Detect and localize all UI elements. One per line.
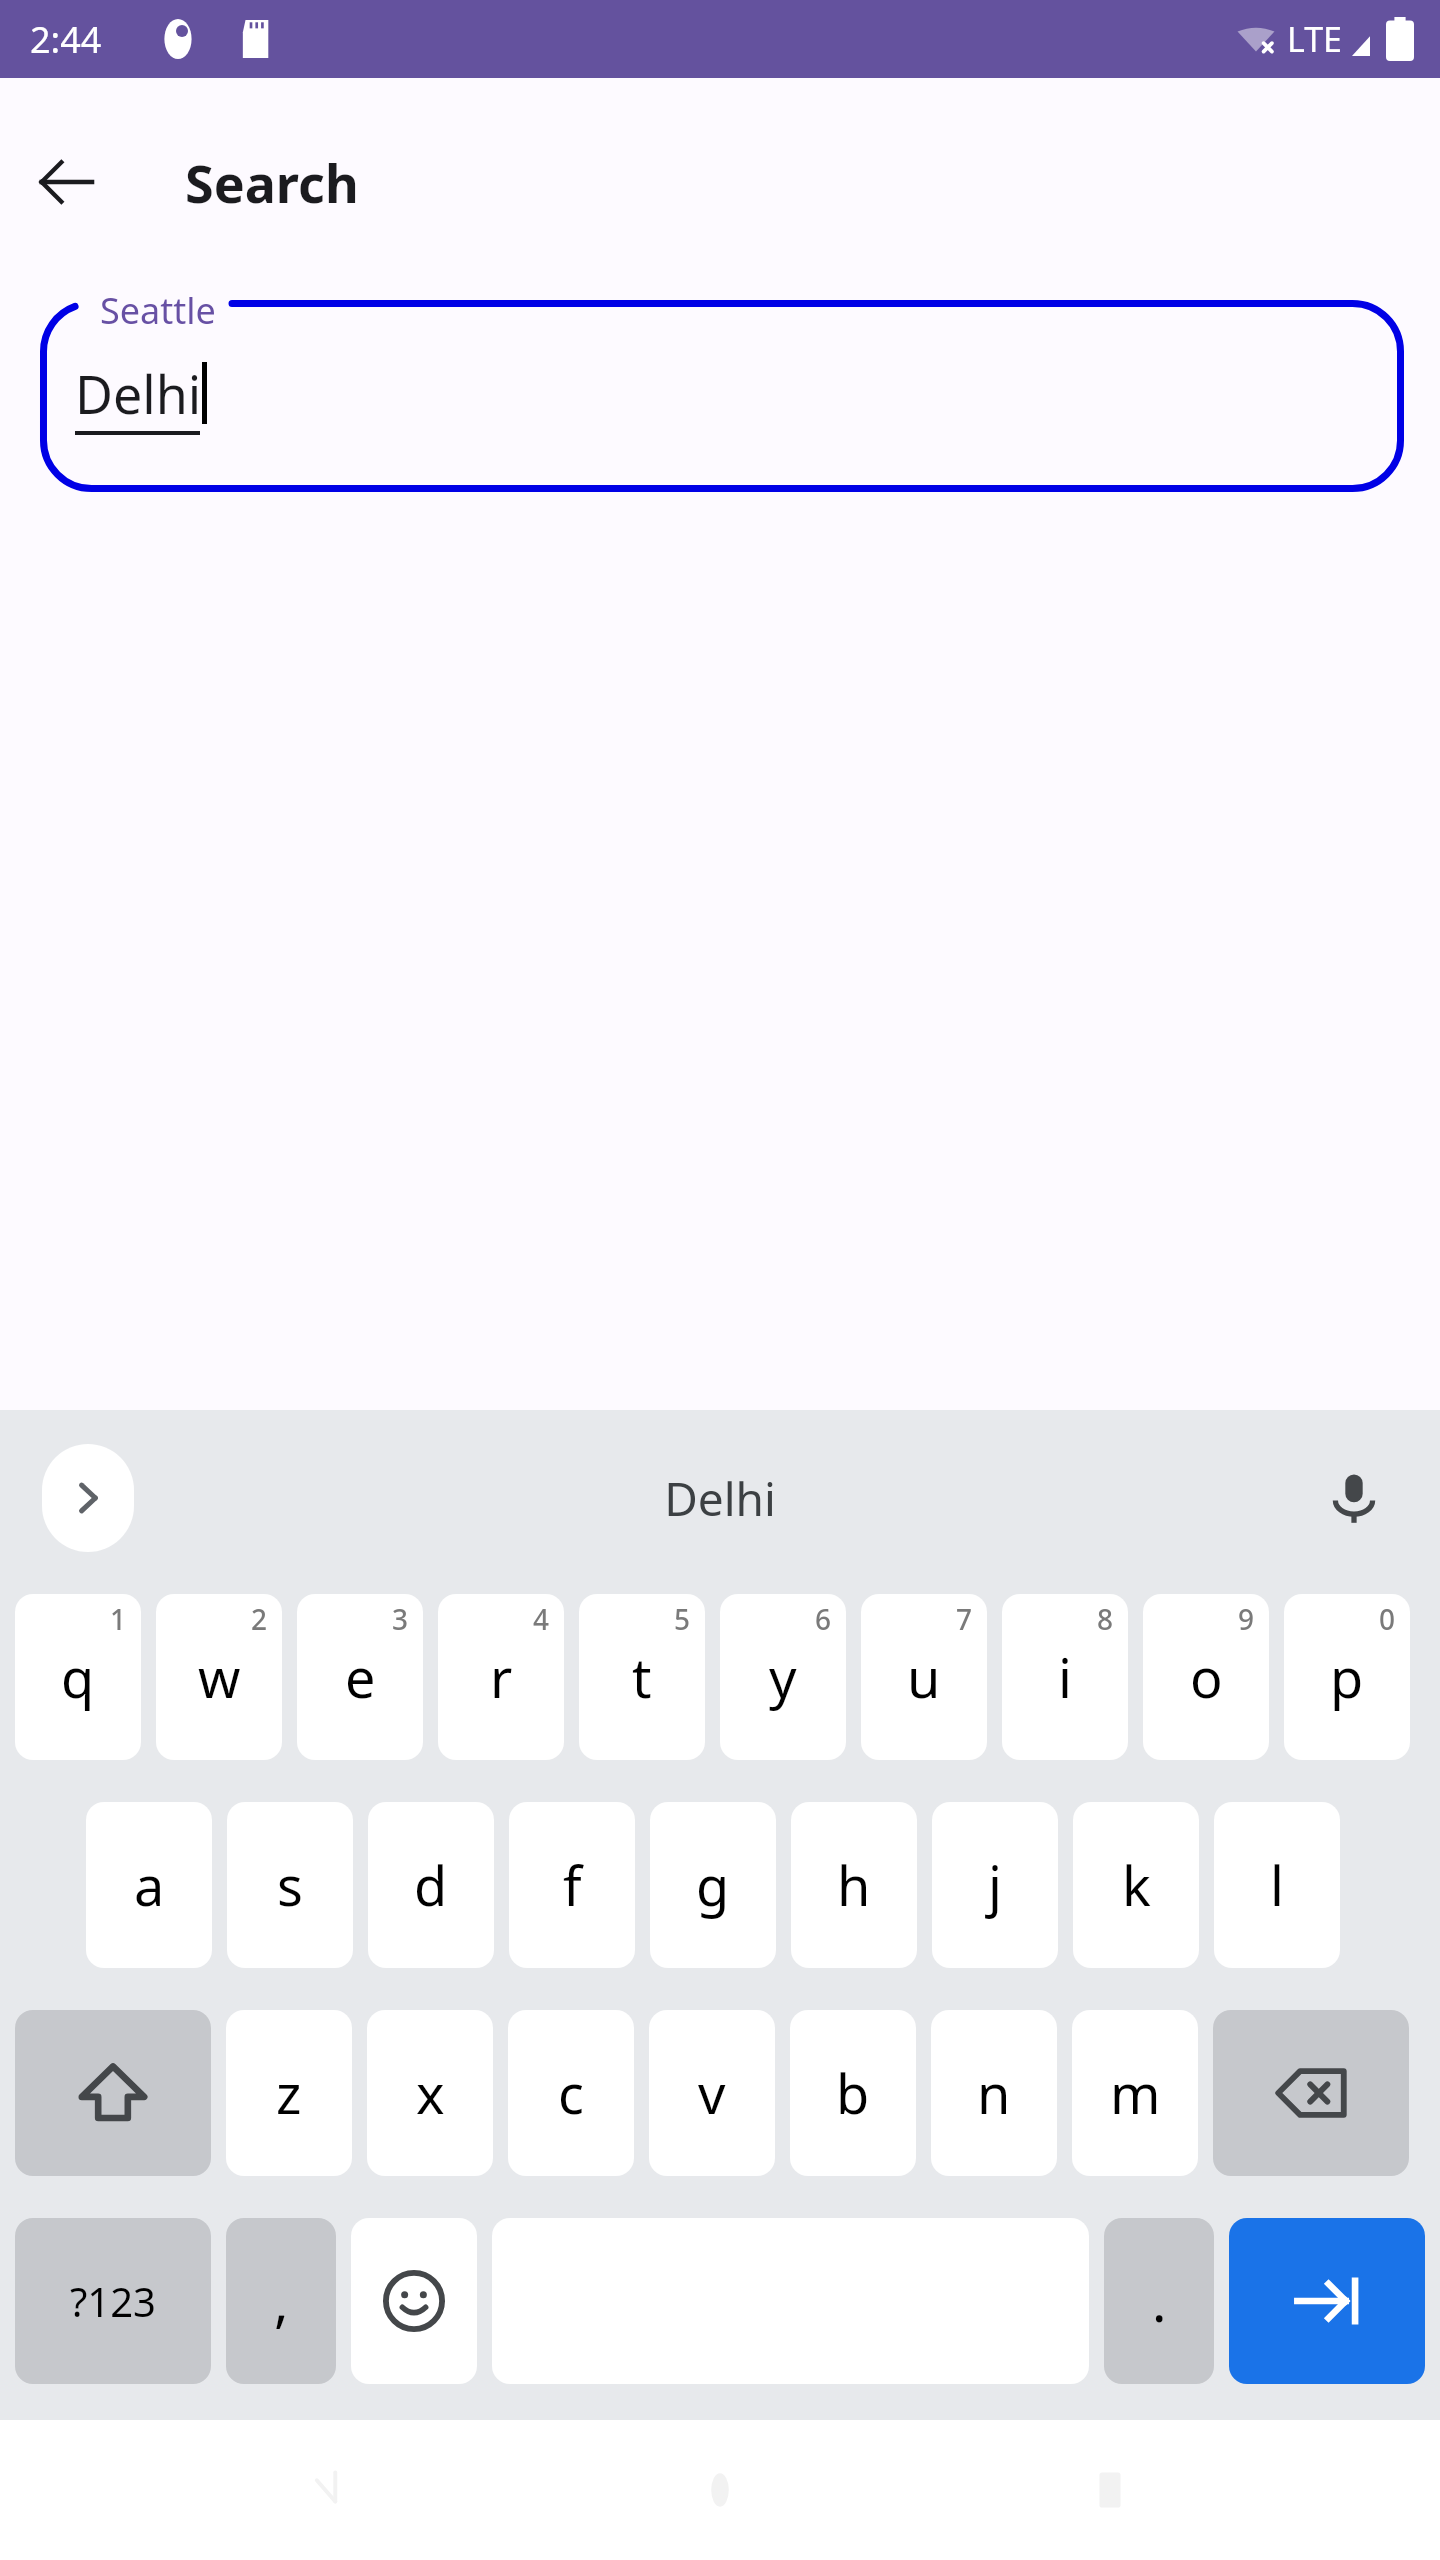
button[interactable]: Enter [1229,2218,1425,2384]
staticText: 7 [956,1600,973,1638]
staticText: 5 [674,1600,691,1638]
staticText: k [1122,1848,1151,1922]
button[interactable]: Expand suggestions [42,1444,134,1552]
staticText: r [490,1640,513,1714]
button[interactable]: s [227,1802,353,1968]
button[interactable]: y [720,1594,846,1760]
staticText: 6 [815,1600,832,1638]
staticText: h [837,1848,871,1922]
button[interactable]: m [1072,2010,1198,2176]
button[interactable]: z [226,2010,352,2176]
staticText: i [1058,1640,1072,1714]
staticText: 1 [110,1600,127,1638]
staticText: 3 [392,1600,409,1638]
staticText: , [274,2264,289,2338]
staticText: Delhi [664,1467,776,1530]
button[interactable]: Backspace [1213,2010,1409,2176]
staticText: 4 [533,1600,550,1638]
button[interactable]: l [1214,1802,1340,1968]
staticText: v [698,2056,726,2130]
button[interactable]: , [226,2218,336,2384]
staticText: e [345,1640,376,1714]
button[interactable]: u [861,1594,987,1760]
button[interactable]: Shift [15,2010,211,2176]
button[interactable]: a [86,1802,212,1968]
button[interactable]: d [368,1802,494,1968]
staticText: d [414,1848,448,1922]
staticText: w [198,1640,241,1714]
button[interactable]: v [649,2010,775,2176]
staticText: m [1110,2056,1161,2130]
button[interactable]: Voice input [1314,1458,1394,1538]
button[interactable]: g [650,1802,776,1968]
staticText: Delhi [75,358,202,429]
button[interactable]: w [156,1594,282,1760]
button[interactable]: Back [18,134,114,230]
button[interactable]: o [1143,1594,1269,1760]
staticText: Search [185,147,359,218]
staticText: q [61,1640,95,1714]
button[interactable]: q [15,1594,141,1760]
staticText: z [276,2056,302,2130]
staticText: t [632,1640,652,1714]
button[interactable]: k [1073,1802,1199,1968]
staticText: l [1270,1848,1284,1922]
button[interactable]: Delhi [40,300,1404,492]
button[interactable]: j [932,1802,1058,1968]
staticText: s [277,1848,303,1922]
staticText: 9 [1238,1600,1255,1638]
staticText: 2:44 [30,15,102,64]
staticText: o [1190,1640,1223,1714]
staticText: 2 [251,1600,268,1638]
staticText: 0 [1379,1600,1396,1638]
button[interactable]: p [1284,1594,1410,1760]
staticText: n [977,2056,1011,2130]
staticText: 8 [1097,1600,1114,1638]
staticText: Seattle [100,286,216,335]
button[interactable]: ?123 [15,2218,211,2384]
staticText: b [836,2056,870,2130]
button[interactable]: Delhi [664,1467,776,1530]
staticText: p [1330,1640,1364,1714]
staticText: c [558,2056,584,2130]
button[interactable]: f [509,1802,635,1968]
button[interactable]: r [438,1594,564,1760]
button[interactable]: n [931,2010,1057,2176]
staticText: a [134,1848,165,1922]
staticText: ?123 [70,2274,156,2328]
staticText: LTE [1287,16,1342,62]
staticText: g [696,1848,730,1922]
button[interactable]: e [297,1594,423,1760]
button[interactable]: Emoji [351,2218,477,2384]
button[interactable]: i [1002,1594,1128,1760]
button[interactable]: . [1104,2218,1214,2384]
staticText: f [563,1848,582,1922]
button[interactable]: x [367,2010,493,2176]
button[interactable]: t [579,1594,705,1760]
staticText: . [1152,2264,1167,2338]
staticText: u [907,1640,941,1714]
staticText: j [988,1848,1002,1922]
button[interactable]: h [791,1802,917,1968]
staticText: x [416,2056,445,2130]
button[interactable]: b [790,2010,916,2176]
staticText: y [769,1640,797,1714]
button[interactable]: c [508,2010,634,2176]
